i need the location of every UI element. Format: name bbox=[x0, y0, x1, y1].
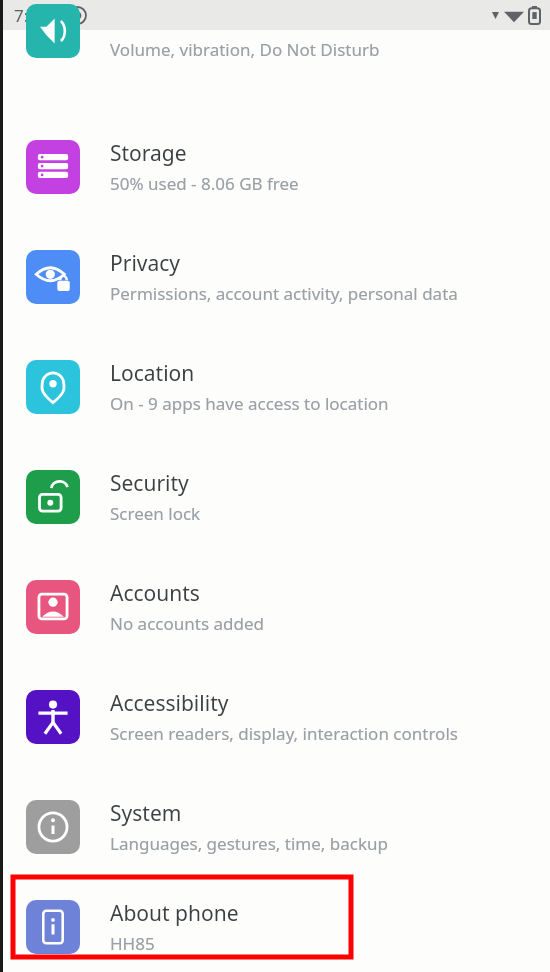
button[interactable]: Security bbox=[0, 442, 550, 552]
button[interactable]: Accounts bbox=[0, 552, 550, 662]
staticText: On - 9 apps have access to location bbox=[110, 392, 389, 415]
staticText: Accounts bbox=[110, 579, 200, 608]
staticText: Screen lock bbox=[110, 502, 201, 525]
staticText: Location bbox=[110, 359, 195, 388]
button[interactable]: Storage bbox=[0, 112, 550, 222]
staticText: 7:23 bbox=[14, 4, 48, 27]
staticText: Privacy bbox=[110, 249, 181, 278]
button[interactable]: About phone bbox=[0, 882, 550, 972]
staticText: Accessibility bbox=[110, 689, 229, 718]
other: Sound bbox=[26, 4, 80, 58]
staticText: Permissions, account activity, personal … bbox=[110, 282, 458, 305]
staticText: About phone bbox=[110, 899, 239, 928]
staticText: HH85 bbox=[110, 932, 155, 955]
button[interactable]: Sound bbox=[0, 30, 550, 112]
staticText: Security bbox=[110, 469, 189, 498]
staticText: Languages, gestures, time, backup bbox=[110, 832, 389, 855]
staticText: No accounts added bbox=[110, 612, 264, 635]
staticText: Storage bbox=[110, 139, 187, 168]
button[interactable]: Location bbox=[0, 332, 550, 442]
button[interactable]: Accessibility bbox=[0, 662, 550, 772]
staticText: Screen readers, display, interaction con… bbox=[110, 722, 458, 745]
button[interactable]: System bbox=[0, 772, 550, 882]
button[interactable]: Privacy bbox=[0, 222, 550, 332]
staticText: System bbox=[110, 799, 182, 828]
staticText: 50% used - 8.06 GB free bbox=[110, 172, 299, 195]
staticText: Volume, vibration, Do Not Disturb bbox=[110, 38, 380, 61]
